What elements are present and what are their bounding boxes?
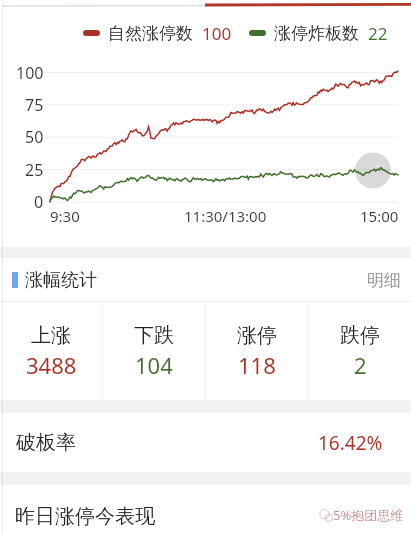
staticText: 3488 <box>26 350 77 380</box>
staticText: 104 <box>135 350 173 380</box>
staticText: 100 <box>202 22 232 45</box>
staticText: 明细 <box>367 270 401 291</box>
staticText: 22 <box>368 22 388 45</box>
button[interactable]: 上涨 <box>0 302 102 400</box>
staticText: 0 <box>34 191 44 213</box>
staticText: 跌停 <box>340 323 380 348</box>
button[interactable]: 破板率 <box>0 413 411 472</box>
staticText: 9:30 <box>50 206 80 226</box>
button[interactable]: 涨停 <box>206 302 308 400</box>
staticText: 75 <box>25 94 44 116</box>
staticText: 下跌 <box>134 323 174 348</box>
staticText: 涨停 <box>237 323 277 348</box>
staticText: 昨日涨停今表现 <box>15 504 155 529</box>
staticText: 自然涨停数 <box>108 23 193 44</box>
staticText: 涨幅统计 <box>25 269 97 292</box>
staticText: 上涨 <box>31 323 71 348</box>
staticText: 5%抱团思维 <box>333 506 404 524</box>
staticText: 涨停炸板数 <box>274 23 359 44</box>
staticText: 25 <box>25 159 44 181</box>
staticText: 15:00 <box>360 206 399 226</box>
staticText: 2 <box>354 350 367 380</box>
button[interactable]: 下跌 <box>103 302 205 400</box>
staticText: 破板率 <box>16 430 76 455</box>
staticText: 11:30/13:00 <box>184 206 267 226</box>
staticText: 16.42% <box>318 430 383 456</box>
button[interactable]: 跌停 <box>309 302 411 400</box>
staticText: 118 <box>238 350 276 380</box>
staticText: 50 <box>25 126 44 148</box>
staticText: 100 <box>16 62 44 84</box>
